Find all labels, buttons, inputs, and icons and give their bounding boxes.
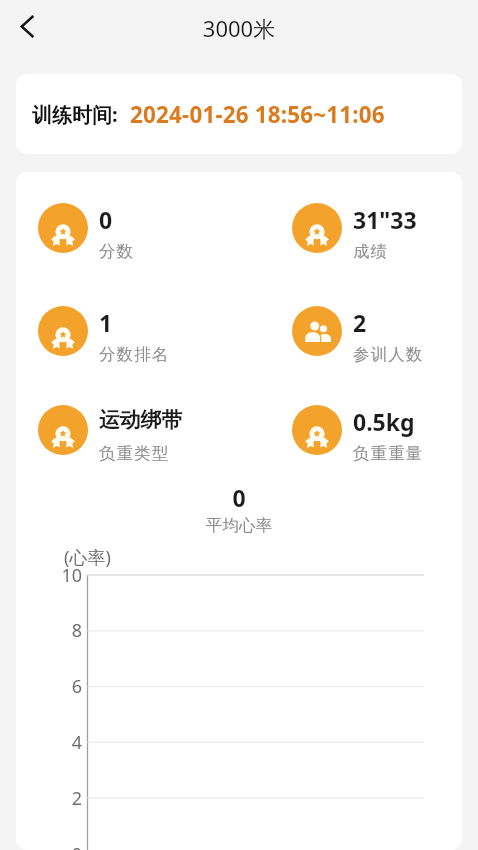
staticText: 分数 [99, 241, 135, 262]
button[interactable]: Back [5, 4, 50, 49]
staticText: 2 [353, 307, 367, 338]
staticText: 0.5kg [353, 406, 415, 437]
staticText: (心率) [64, 545, 111, 570]
staticText: 参训人数 [353, 344, 424, 365]
staticText: 成绩 [353, 241, 389, 262]
staticText: 分数排名 [99, 344, 170, 365]
staticText: 2024-01-26 18:56~11:06 [130, 99, 385, 130]
staticText: 运动绑带 [99, 407, 183, 433]
staticText: 8 [16, 618, 82, 643]
staticText: 10 [16, 563, 82, 588]
staticText: 0 [16, 842, 82, 850]
button[interactable]: 0.5kg [292, 405, 462, 455]
staticText: 0 [16, 482, 462, 513]
button[interactable]: 2 [292, 306, 462, 356]
staticText: 3000米 [0, 13, 478, 43]
staticText: 负重类型 [99, 443, 170, 464]
button[interactable]: 训练时间: [16, 74, 462, 154]
button[interactable]: 0 [38, 203, 292, 253]
staticText: 训练时间: [32, 101, 118, 128]
staticText: 负重重量 [353, 443, 424, 464]
staticText: 2 [16, 786, 82, 811]
staticText: 1 [99, 307, 113, 338]
staticText: 4 [16, 730, 82, 755]
button[interactable]: 运动绑带 [38, 405, 292, 455]
button[interactable]: 31"33 [292, 203, 462, 253]
staticText: 平均心率 [16, 515, 462, 536]
button[interactable]: 1 [38, 306, 292, 356]
staticText: 0 [99, 204, 113, 235]
staticText: 6 [16, 674, 82, 699]
staticText: 31"33 [353, 204, 417, 235]
